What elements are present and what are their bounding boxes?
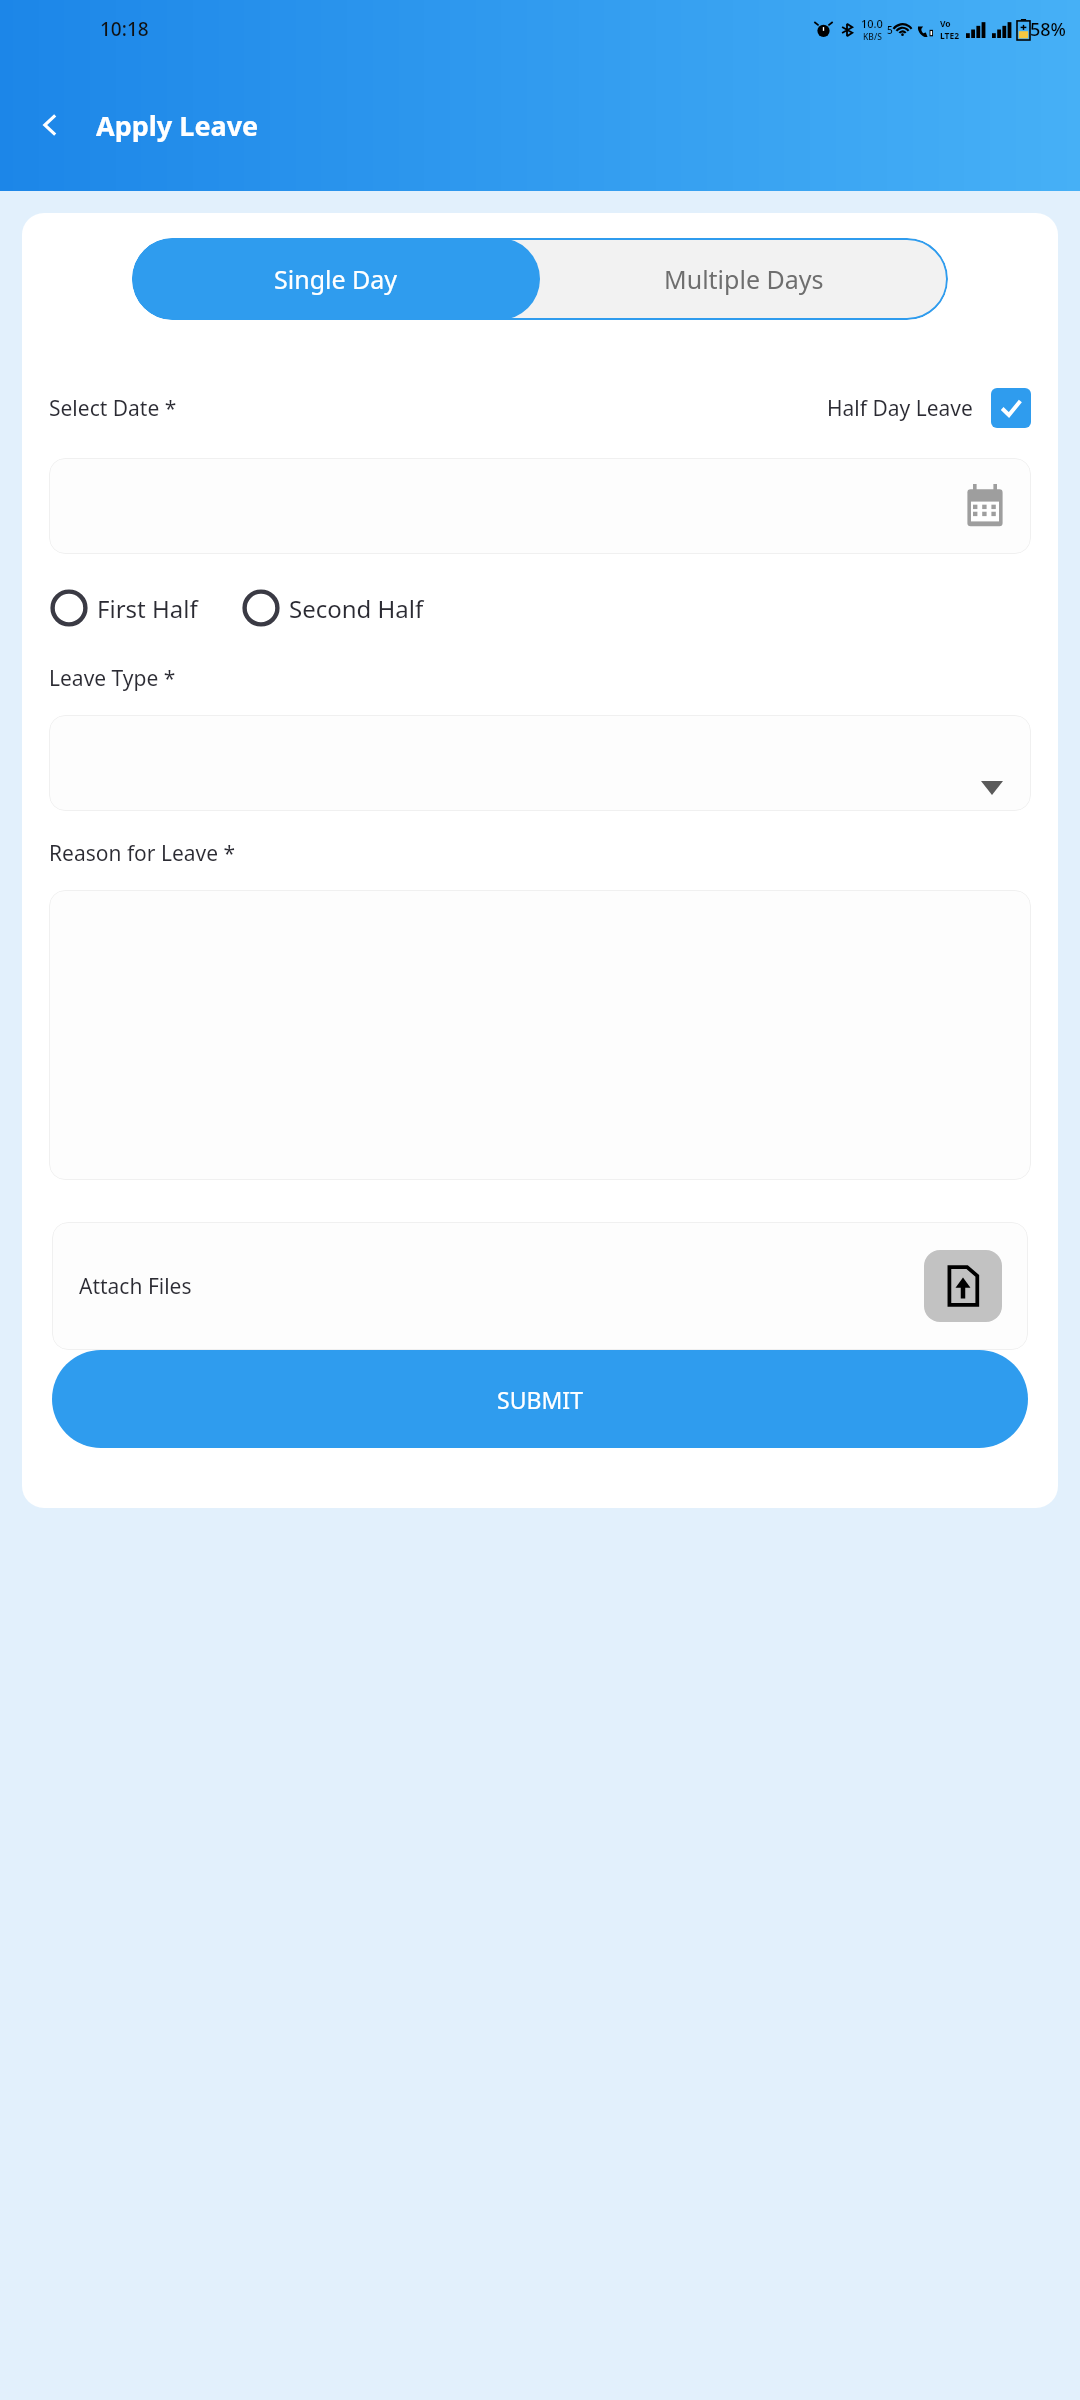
staticText: Multiple Days <box>664 262 824 296</box>
staticText: KB/S <box>863 31 882 43</box>
button[interactable]: Attach file <box>924 1250 1002 1322</box>
staticText: 5 <box>887 23 893 37</box>
staticText: LTE2 <box>940 30 960 42</box>
button[interactable]: Attach Files <box>52 1222 1028 1350</box>
staticText: 10.0 <box>861 16 883 31</box>
staticText: Reason for Leave * <box>49 839 236 868</box>
staticText: Select Date * <box>49 394 177 423</box>
staticText: Single Day <box>274 262 398 296</box>
staticText: Half Day Leave <box>827 394 973 423</box>
button[interactable]: Single Day <box>132 238 540 320</box>
staticText: First Half <box>97 592 198 625</box>
staticText: Vo <box>940 18 951 30</box>
button[interactable]: Back <box>26 101 74 149</box>
button[interactable]: Half Day Leave <box>827 388 1031 428</box>
button[interactable]: Select date <box>49 458 1031 554</box>
staticText: Leave Type * <box>49 664 176 693</box>
button[interactable]: First Half <box>49 588 198 628</box>
button[interactable]: Second Half <box>241 588 424 628</box>
button[interactable]: SUBMIT <box>52 1350 1028 1448</box>
staticText: SUBMIT <box>497 1384 583 1415</box>
staticText: Second Half <box>289 592 424 625</box>
button[interactable]: Leave type <box>49 715 1031 811</box>
staticText: Attach Files <box>79 1272 192 1301</box>
staticText: Apply Leave <box>96 107 259 144</box>
staticText: 58% <box>1030 17 1066 42</box>
staticText: 10:18 <box>100 16 149 42</box>
button[interactable]: Multiple Days <box>540 238 948 320</box>
